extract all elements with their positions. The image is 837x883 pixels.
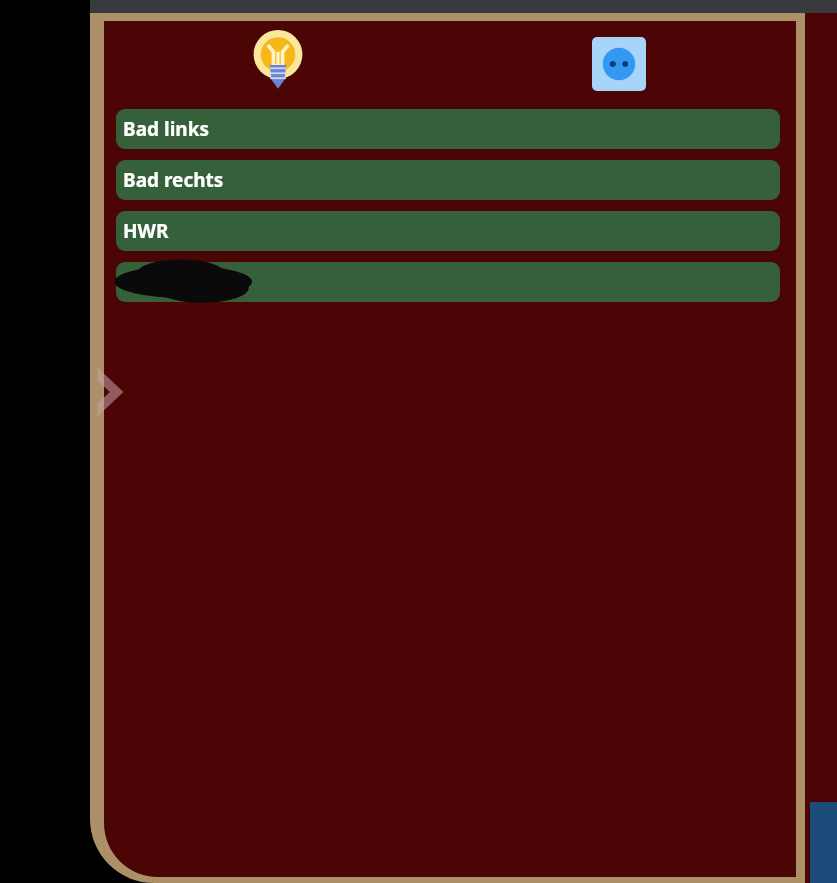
button[interactable]: Bad rechts: [116, 160, 780, 200]
button[interactable]: Bad links: [116, 109, 780, 149]
other: Open drawer: [96, 366, 124, 418]
staticText: Nora: [123, 269, 170, 295]
button[interactable]: Nora: [116, 262, 780, 302]
button[interactable]: HWR: [116, 211, 780, 251]
button[interactable]: Light: [245, 28, 311, 94]
staticText: HWR: [123, 218, 169, 244]
button[interactable]: Power outlet: [592, 37, 646, 91]
staticText: Bad rechts: [123, 167, 224, 193]
staticText: Bad links: [123, 116, 209, 142]
